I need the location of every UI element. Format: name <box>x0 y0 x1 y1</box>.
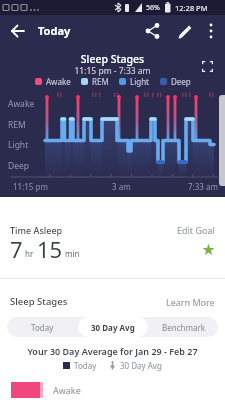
staticText: hr <box>25 248 34 259</box>
staticText: 3 am <box>112 181 131 192</box>
button[interactable]: Sleep Stages <box>10 295 215 308</box>
staticText: 11:15 pm - 7:33 am <box>0 65 225 77</box>
staticText: 7:33 am <box>188 181 218 192</box>
staticText: Benchmark <box>162 322 205 333</box>
staticText: Awake <box>8 98 35 110</box>
staticText: 15 <box>37 234 63 264</box>
staticText: 30 Day Avg <box>120 360 162 371</box>
staticText: Sleep Stages <box>0 52 225 66</box>
staticText: Time Asleep <box>10 224 63 236</box>
staticText: REM <box>8 119 26 131</box>
button[interactable]: 30 Day Avg <box>78 317 148 337</box>
staticText: 30 Day Avg <box>91 322 135 333</box>
staticText: Today <box>31 322 54 333</box>
staticText: Light <box>8 139 29 151</box>
staticText: 11:15 pm <box>13 181 48 192</box>
button[interactable] <box>140 15 164 47</box>
staticText: Learn More <box>166 296 215 308</box>
staticText: Today <box>38 23 71 38</box>
staticText: Edit Goal <box>177 224 215 236</box>
button[interactable] <box>200 15 225 47</box>
staticText: Awake <box>53 384 81 396</box>
staticText: 56% <box>146 3 160 13</box>
staticText: Sleep Stages <box>10 295 68 308</box>
staticText: Awake <box>46 76 71 87</box>
staticText: min <box>65 248 80 259</box>
button[interactable]: Time Asleep <box>10 224 215 236</box>
staticText: Light <box>130 76 150 87</box>
staticText: Deep <box>171 76 191 87</box>
staticText: 7 <box>10 234 23 264</box>
staticText: Today <box>74 360 97 371</box>
button[interactable] <box>0 15 30 47</box>
button[interactable] <box>172 15 196 47</box>
button[interactable]: Today <box>7 317 78 337</box>
staticText: REM <box>92 76 109 87</box>
staticText: 12:28 PM <box>175 3 208 13</box>
staticText: Your 30 Day Average for Jan 29 - Feb 27 <box>0 345 225 357</box>
button[interactable]: Benchmark <box>148 317 218 337</box>
staticText: Deep <box>8 160 30 172</box>
